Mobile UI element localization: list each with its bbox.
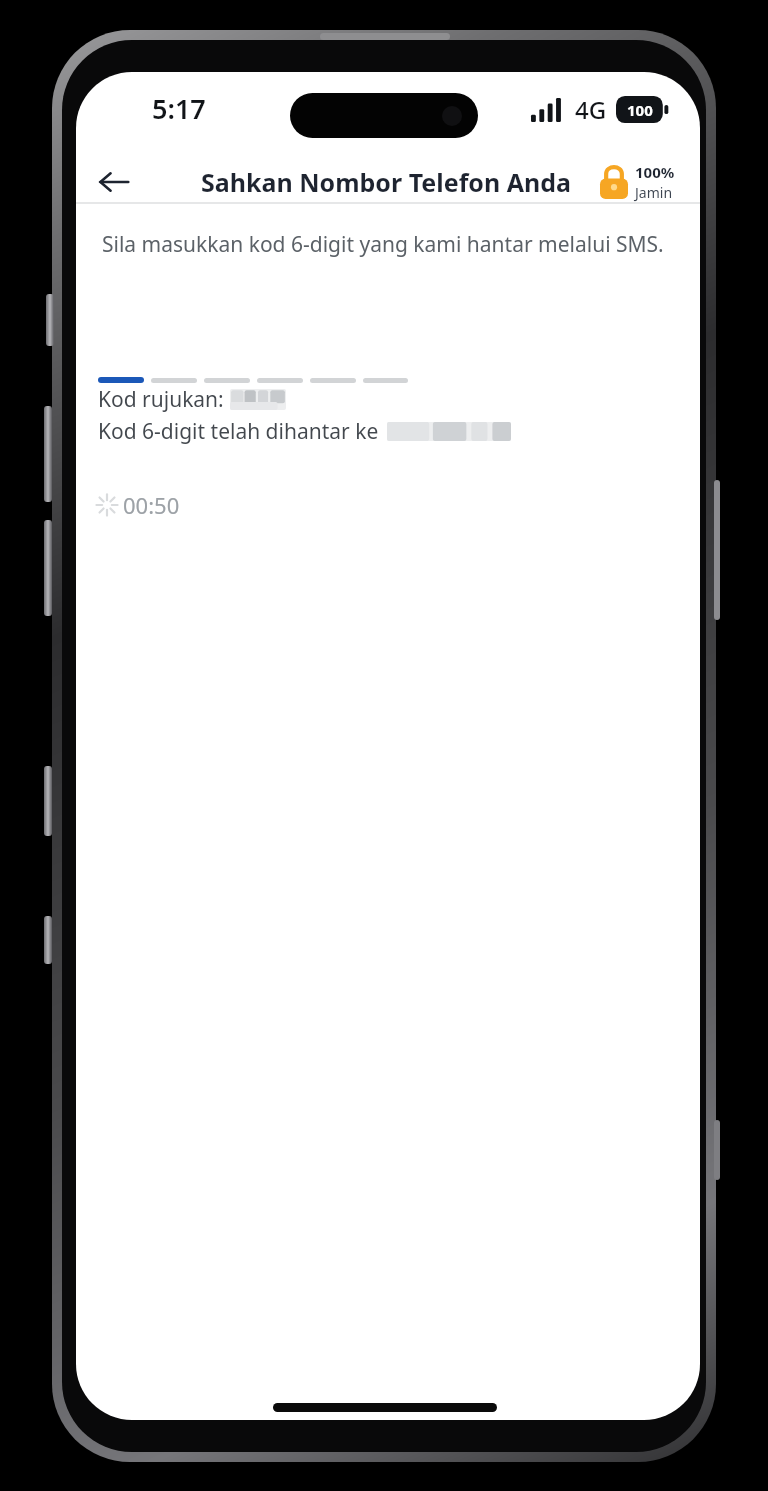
- staticText: Sila masukkan kod 6-digit yang kami hant…: [102, 230, 664, 259]
- staticText: 5:17: [152, 90, 206, 127]
- button[interactable]: [98, 353, 408, 383]
- staticText: 100%: [635, 162, 675, 182]
- button[interactable]: Back: [86, 154, 142, 210]
- staticText: 4G: [575, 93, 607, 126]
- staticText: 00:50: [123, 490, 180, 520]
- staticText: 100: [627, 100, 653, 120]
- staticText: Sahkan Nombor Telefon Anda: [194, 165, 578, 199]
- button[interactable]: Jamin 100%: [600, 157, 675, 207]
- staticText: Kod 6-digit telah dihantar ke: [98, 417, 379, 446]
- staticText: Jamin: [635, 183, 673, 202]
- staticText: Kod rujukan:: [98, 385, 224, 414]
